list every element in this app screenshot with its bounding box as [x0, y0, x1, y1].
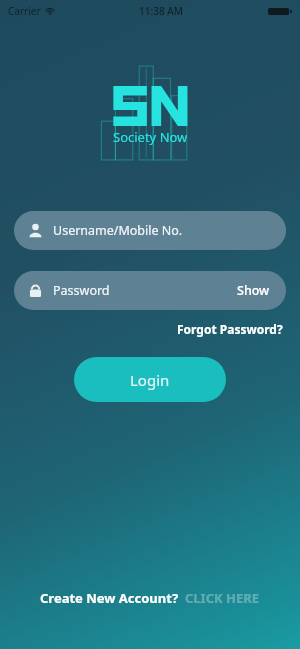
button[interactable]: Login — [74, 357, 226, 402]
staticText: Create New Account? — [40, 589, 179, 607]
staticText: 11:38 AM — [139, 4, 183, 18]
staticText: Forgot Password? — [177, 321, 283, 337]
staticText: Password — [53, 282, 110, 299]
button[interactable]: Show — [235, 280, 272, 301]
staticText: Carrier — [8, 4, 41, 18]
staticText: Society Now — [113, 128, 188, 146]
button[interactable]: Forgot Password? — [174, 318, 286, 340]
button[interactable]: Create New Account? — [0, 584, 300, 612]
staticText: Login — [130, 370, 170, 390]
button[interactable]: Username/Mobile No. — [14, 211, 286, 250]
staticText: CLICK HERE — [185, 589, 260, 607]
button[interactable]: Password — [14, 271, 286, 310]
staticText: Username/Mobile No. — [53, 222, 183, 239]
staticText: Show — [237, 282, 270, 299]
